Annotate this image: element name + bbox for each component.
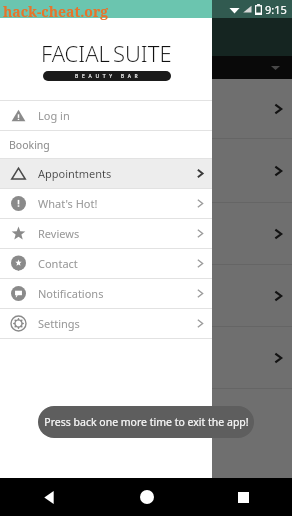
- staticText: Chemical Peel: [12, 216, 113, 236]
- button[interactable]: Recent apps: [195, 478, 292, 516]
- button[interactable]: Log in: [0, 101, 212, 130]
- staticText: Press back one more time to exit the app…: [44, 415, 249, 429]
- button[interactable]: Contact: [0, 249, 212, 278]
- button[interactable]: Settings: [0, 309, 212, 338]
- button[interactable]: Home: [98, 478, 195, 516]
- button[interactable]: Back: [0, 478, 98, 516]
- staticText: 9:15: [265, 2, 287, 16]
- staticText: Must be added with a facial: [12, 113, 141, 127]
- staticText: SUITE: [113, 38, 172, 68]
- staticText: Booking: [9, 138, 50, 152]
- staticText: Appointments: [38, 166, 112, 181]
- staticText: What's Hot!: [38, 196, 98, 211]
- staticText: Must be added with a facial: [12, 300, 141, 314]
- button[interactable]: Reviews: [0, 219, 212, 248]
- button[interactable]: Appointments: [0, 159, 212, 188]
- staticText: FACIAL: [41, 38, 110, 68]
- staticText: Dermaplaning: [12, 91, 115, 111]
- staticText: Contact: [38, 256, 78, 271]
- staticText: Log in: [38, 108, 70, 123]
- staticText: B E A U T Y B A R: [75, 73, 139, 80]
- staticText: Reviews: [38, 226, 80, 241]
- staticText: Settings: [38, 316, 80, 331]
- staticText: Micro-needling: [12, 153, 120, 173]
- staticText: Notifications: [38, 286, 104, 301]
- staticText: Collagen induction therapy. Help with: [12, 175, 189, 189]
- button[interactable]: Notifications: [0, 279, 212, 308]
- staticText: hack-cheat.org: [3, 2, 109, 21]
- staticText: Resurfacing treatment: [12, 238, 118, 252]
- staticText: Oxygen Blast: [12, 278, 107, 298]
- button[interactable]: What's Hot!: [0, 189, 212, 218]
